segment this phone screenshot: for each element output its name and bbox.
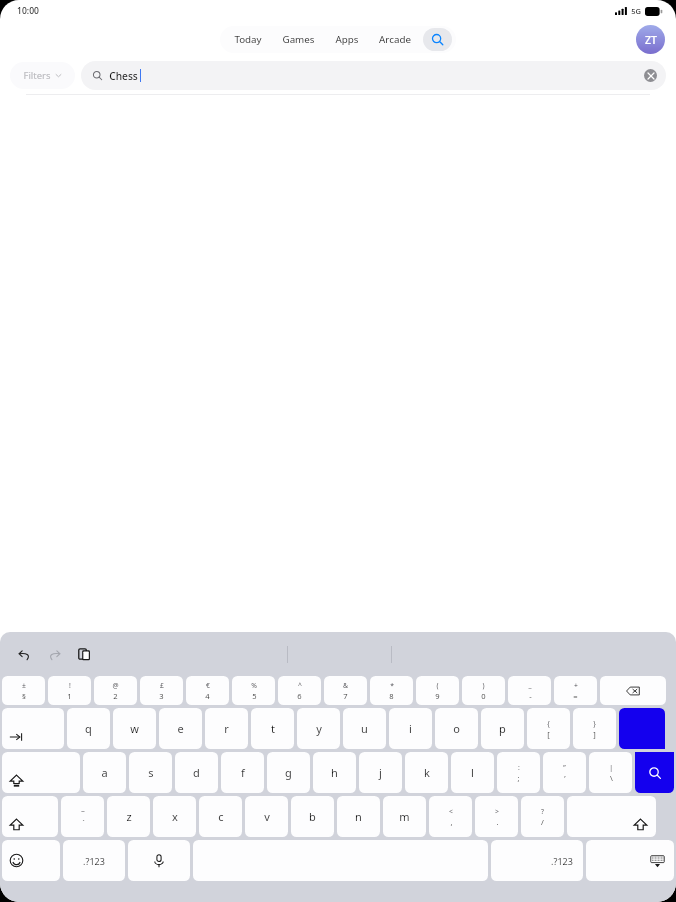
staticText: e: [177, 721, 184, 736]
staticText: ±: [22, 681, 26, 690]
staticText: 1: [67, 691, 72, 701]
button[interactable]: |: [589, 752, 632, 793]
staticText: [: [547, 729, 550, 739]
button[interactable]: Undo: [18, 648, 31, 661]
button[interactable]: *: [370, 676, 413, 705]
staticText: t: [271, 721, 275, 736]
button[interactable]: +: [554, 676, 597, 705]
button[interactable]: €: [186, 676, 229, 705]
button[interactable]: _: [508, 676, 551, 705]
staticText: 0: [481, 691, 486, 701]
button[interactable]: c: [199, 796, 242, 837]
button[interactable]: k: [405, 752, 448, 793]
button[interactable]: Emoji: [2, 840, 60, 881]
staticText: ;: [517, 773, 520, 783]
button[interactable]: w: [113, 708, 156, 749]
staticText: 2: [113, 691, 118, 701]
button[interactable]: f: [221, 752, 264, 793]
button[interactable]: t: [251, 708, 294, 749]
staticText: 10:00: [17, 5, 39, 17]
button[interactable]: v: [245, 796, 288, 837]
button[interactable]: Backspace: [600, 676, 666, 705]
staticText: 9: [435, 691, 440, 701]
staticText: >: [495, 807, 499, 816]
button[interactable]: Shift right: [567, 796, 656, 837]
button[interactable]: .?123: [491, 840, 583, 881]
staticText: y: [316, 721, 322, 736]
button[interactable]: ”: [543, 752, 586, 793]
button[interactable]: Filters: [10, 62, 75, 89]
button[interactable]: l: [451, 752, 494, 793]
button[interactable]: .?123: [63, 840, 125, 881]
button[interactable]: n: [337, 796, 380, 837]
button[interactable]: Dictation: [128, 840, 190, 881]
button[interactable]: Tab: [2, 708, 64, 749]
button[interactable]: x: [153, 796, 196, 837]
button[interactable]: r: [205, 708, 248, 749]
button[interactable]: :: [497, 752, 540, 793]
button[interactable]: y: [297, 708, 340, 749]
button[interactable]: &: [324, 676, 367, 705]
button[interactable]: @: [94, 676, 137, 705]
button[interactable]: Caps lock: [2, 752, 80, 793]
button[interactable]: Chess: [81, 61, 666, 90]
staticText: r: [224, 721, 229, 736]
button[interactable]: }: [573, 708, 616, 749]
button[interactable]: %: [232, 676, 275, 705]
staticText: j: [379, 765, 382, 780]
staticText: Apps: [335, 33, 359, 46]
button[interactable]: Arcade: [369, 28, 421, 51]
button[interactable]: <: [429, 796, 472, 837]
button[interactable]: Paste: [78, 648, 91, 661]
button[interactable]: >: [475, 796, 518, 837]
button[interactable]: i: [389, 708, 432, 749]
button[interactable]: m: [383, 796, 426, 837]
button[interactable]: Hide keyboard: [586, 840, 674, 881]
button[interactable]: z: [107, 796, 150, 837]
button[interactable]: Search key: [635, 752, 674, 793]
button[interactable]: {: [527, 708, 570, 749]
staticText: 4: [205, 691, 210, 701]
button[interactable]: Search tab: [423, 28, 452, 51]
button[interactable]: j: [359, 752, 402, 793]
button[interactable]: Apps: [325, 28, 369, 51]
button[interactable]: b: [291, 796, 334, 837]
button[interactable]: o: [435, 708, 478, 749]
button[interactable]: ): [462, 676, 505, 705]
button[interactable]: Search: [619, 708, 665, 749]
staticText: 7: [343, 691, 348, 701]
button[interactable]: ~: [61, 796, 104, 837]
button[interactable]: Clear search: [644, 69, 657, 82]
button[interactable]: a: [83, 752, 126, 793]
button[interactable]: ±: [2, 676, 45, 705]
button[interactable]: e: [159, 708, 202, 749]
staticText: 5: [252, 691, 257, 701]
staticText: m: [399, 809, 410, 824]
button[interactable]: s: [129, 752, 172, 793]
button[interactable]: d: [175, 752, 218, 793]
staticText: |: [609, 763, 613, 772]
staticText: k: [424, 765, 430, 780]
button[interactable]: u: [343, 708, 386, 749]
staticText: &: [343, 681, 348, 690]
button[interactable]: Games: [272, 28, 325, 51]
button[interactable]: Account: [636, 25, 665, 54]
button[interactable]: ?: [521, 796, 564, 837]
staticText: Filters: [23, 69, 51, 82]
staticText: w: [130, 721, 139, 736]
button[interactable]: ^: [278, 676, 321, 705]
button[interactable]: h: [313, 752, 356, 793]
button[interactable]: £: [140, 676, 183, 705]
button[interactable]: Redo: [48, 648, 61, 661]
button[interactable]: p: [481, 708, 524, 749]
button[interactable]: Today: [224, 28, 272, 51]
staticText: p: [499, 721, 506, 736]
staticText: d: [193, 765, 200, 780]
button[interactable]: g: [267, 752, 310, 793]
button[interactable]: (: [416, 676, 459, 705]
staticText: ,: [450, 817, 453, 827]
button[interactable]: Shift: [2, 796, 58, 837]
button[interactable]: q: [67, 708, 110, 749]
button[interactable]: !: [48, 676, 91, 705]
